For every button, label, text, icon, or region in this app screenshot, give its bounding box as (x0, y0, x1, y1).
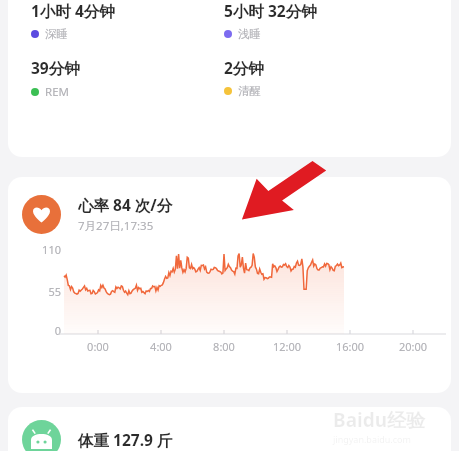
button[interactable]: 1小时 4分钟 (31, 0, 224, 41)
staticText: 8:00 (198, 339, 250, 354)
staticText: 浅睡 (238, 27, 261, 41)
staticText: 0 (35, 323, 61, 338)
button[interactable]: Weight (8, 407, 451, 451)
staticText: 4:00 (135, 339, 187, 354)
staticText: 20:00 (387, 339, 439, 354)
other: Heart rate (22, 195, 61, 234)
staticText: 39分钟 (31, 57, 80, 78)
staticText: Baidu经验 (333, 407, 426, 433)
button[interactable]: 1小时 4分钟 (8, 0, 451, 157)
staticText: 55 (35, 284, 61, 299)
button[interactable]: 5小时 32分钟 (224, 0, 440, 41)
staticText: 体重 127.9 斤 (78, 429, 173, 450)
staticText: 5小时 32分钟 (224, 0, 317, 21)
staticText: 心率 84 次/分 (78, 194, 173, 215)
button[interactable]: 39分钟 (31, 57, 224, 100)
staticText: 深睡 (45, 27, 68, 41)
other: Weight (22, 420, 61, 451)
staticText: jingyan.baidu.com (333, 433, 411, 445)
staticText: 1小时 4分钟 (31, 0, 115, 21)
staticText: 16:00 (324, 339, 376, 354)
staticText: 2分钟 (224, 57, 264, 78)
button[interactable]: 2分钟 (224, 57, 440, 98)
staticText: REM (45, 84, 69, 100)
staticText: 12:00 (261, 339, 313, 354)
staticText: 0:00 (72, 339, 124, 354)
staticText: 110 (35, 242, 61, 257)
staticText: 7月27日,17:35 (78, 218, 154, 234)
button[interactable]: Heart rate (8, 177, 451, 393)
staticText: 清醒 (238, 84, 261, 98)
